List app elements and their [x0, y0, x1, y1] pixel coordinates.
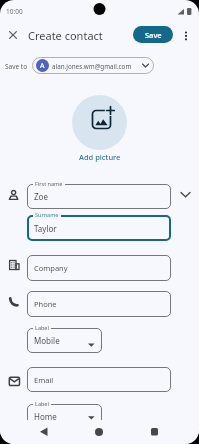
staticText: Label — [35, 400, 49, 407]
staticText: Zoe — [34, 191, 48, 202]
staticText: Company — [34, 263, 68, 273]
staticText: Home — [34, 411, 57, 422]
staticText: Save — [145, 30, 162, 40]
staticText: Save to — [5, 62, 28, 71]
staticText: Email — [34, 375, 54, 385]
staticText: A — [40, 61, 45, 71]
staticText: Surname — [35, 211, 59, 218]
staticText: Label — [35, 324, 49, 331]
staticText: 10:00 — [6, 7, 23, 16]
staticText: Taylor — [34, 223, 57, 234]
staticText: Mobile — [34, 335, 60, 346]
staticText: Create contact — [28, 28, 103, 43]
staticText: alan.jones.wm@gmail.com — [52, 62, 132, 71]
staticText: Add picture — [79, 152, 121, 162]
staticText: First name — [35, 180, 63, 187]
staticText: Phone — [34, 299, 57, 309]
